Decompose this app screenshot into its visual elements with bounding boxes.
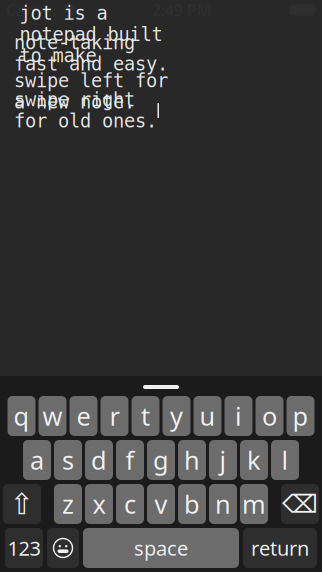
- button[interactable]: k: [240, 440, 268, 480]
- staticText: ◥: [63, 2, 74, 18]
- button[interactable]: g: [147, 440, 175, 480]
- staticText: g: [153, 443, 169, 477]
- staticText: z: [62, 487, 74, 521]
- button[interactable]: e: [69, 396, 97, 436]
- staticText: j: [219, 443, 226, 477]
- staticText: jot is a notepad built to make: [19, 3, 162, 66]
- staticText: return: [251, 535, 309, 561]
- staticText: x: [92, 487, 105, 521]
- button[interactable]: p: [286, 396, 314, 436]
- staticText: note-taking fast and easy.: [14, 32, 168, 75]
- staticText: l: [281, 443, 288, 477]
- button[interactable]: space: [83, 528, 239, 568]
- button[interactable]: d: [85, 440, 113, 480]
- button[interactable]: Delete: [281, 484, 319, 524]
- button[interactable]: v: [147, 484, 175, 524]
- button[interactable]: x: [85, 484, 113, 524]
- button[interactable]: m: [240, 484, 268, 524]
- staticText: b: [184, 487, 200, 521]
- button[interactable]: a: [23, 440, 51, 480]
- staticText: m: [242, 487, 266, 521]
- staticText: t: [141, 399, 150, 433]
- button[interactable]: t: [131, 396, 159, 436]
- button[interactable]: i: [224, 396, 252, 436]
- staticText: Carrier: [6, 0, 59, 21]
- staticText: u: [199, 399, 215, 433]
- staticText: n: [215, 487, 231, 521]
- staticText: p: [292, 399, 308, 433]
- staticText: swipe left for a new note.: [14, 70, 168, 113]
- button[interactable]: 123: [5, 528, 43, 568]
- staticText: ⌫: [282, 490, 318, 518]
- staticText: v: [154, 487, 167, 521]
- staticText: 123: [7, 535, 40, 561]
- staticText: o: [262, 399, 277, 433]
- staticText: ⇧: [9, 487, 34, 521]
- staticText: f: [125, 443, 134, 477]
- button[interactable]: y: [162, 396, 190, 436]
- button[interactable]: b: [178, 484, 206, 524]
- button[interactable]: h: [178, 440, 206, 480]
- button[interactable]: z: [54, 484, 82, 524]
- staticText: s: [62, 443, 74, 477]
- button[interactable]: Emoji: [47, 528, 79, 568]
- button[interactable]: j: [209, 440, 237, 480]
- button[interactable]: c: [116, 484, 144, 524]
- staticText: a: [30, 443, 44, 477]
- staticText: d: [91, 443, 107, 477]
- button[interactable]: w: [38, 396, 66, 436]
- button[interactable]: Shift: [3, 484, 41, 524]
- button[interactable]: s: [54, 440, 82, 480]
- staticText: [85, 62, 96, 83]
- button[interactable]: r: [100, 396, 128, 436]
- staticText: k: [247, 443, 261, 477]
- staticText: r: [109, 399, 119, 433]
- staticText: e: [76, 399, 90, 433]
- staticText: i: [235, 399, 242, 433]
- button[interactable]: l: [271, 440, 299, 480]
- staticText: q: [13, 399, 29, 433]
- button[interactable]: n: [209, 484, 237, 524]
- staticText: space: [134, 535, 188, 561]
- staticText: c: [124, 487, 136, 521]
- staticText: swipe right for old ones.: [14, 89, 157, 132]
- button[interactable]: o: [255, 396, 283, 436]
- button[interactable]: f: [116, 440, 144, 480]
- button[interactable]: return: [243, 528, 317, 568]
- button[interactable]: q: [7, 396, 35, 436]
- staticText: w: [42, 399, 62, 433]
- button[interactable]: u: [193, 396, 221, 436]
- staticText: h: [184, 443, 200, 477]
- staticText: y: [170, 399, 183, 433]
